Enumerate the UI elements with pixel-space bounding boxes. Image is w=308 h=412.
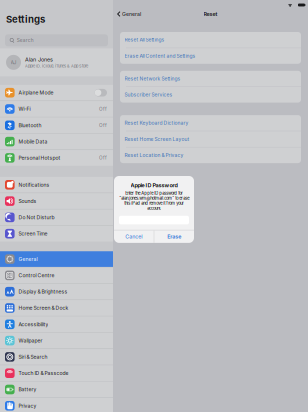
staticText: Erase — [167, 233, 181, 240]
button[interactable]: Reset Network Settings — [120, 71, 301, 86]
staticText: Privacy — [18, 403, 36, 409]
staticText: Display & Brightness — [18, 289, 67, 295]
button[interactable]: Display & Brightness — [0, 284, 113, 300]
staticText: Battery — [18, 386, 36, 392]
button[interactable]: Control Centre — [0, 268, 113, 283]
button[interactable]: Do Not Disturb — [0, 209, 113, 225]
staticText: Reset Home Screen Layout — [124, 136, 189, 142]
staticText: Airplane Mode — [18, 90, 53, 96]
staticText: Accessibility — [18, 321, 48, 327]
staticText: Sounds — [18, 198, 36, 204]
staticText: Subscriber Services — [124, 92, 172, 98]
button[interactable]: Siri & Search — [0, 349, 113, 365]
button[interactable]: Reset All Settings — [120, 32, 301, 48]
staticText: Reset Network Settings — [124, 76, 180, 82]
button[interactable]: Airplane Mode — [0, 85, 113, 101]
button[interactable]: Sounds — [0, 193, 113, 209]
staticText: Off — [99, 122, 107, 128]
staticText: Reset All Settings — [124, 37, 164, 43]
button[interactable]: Reset Home Screen Layout — [120, 131, 301, 147]
button[interactable]: General — [0, 251, 113, 267]
staticText: Settings — [6, 13, 45, 25]
button[interactable]: Screen Time — [0, 226, 113, 241]
staticText: Screen Time — [18, 231, 47, 237]
button[interactable]: Home Screen & Dock — [0, 300, 113, 316]
button[interactable]: Erase — [154, 230, 194, 243]
staticText: Search — [17, 37, 34, 43]
button[interactable]: Subscriber Services — [120, 87, 301, 103]
staticText: Off — [99, 106, 107, 112]
button[interactable]: Notifications — [0, 177, 113, 193]
staticText: Wi-Fi — [18, 106, 30, 112]
staticText: Reset Keyboard Dictionary — [124, 120, 188, 126]
staticText: General — [122, 11, 141, 17]
staticText: Wallpaper — [18, 337, 42, 344]
button[interactable]: Erase All Content and Settings — [120, 48, 301, 64]
button[interactable]: AJ — [0, 48, 113, 76]
staticText: Alan Jones — [25, 56, 53, 63]
staticText: Cancel — [125, 233, 142, 240]
staticText: Siri & Search — [18, 354, 47, 360]
button[interactable]: Reset Location & Privacy — [120, 147, 301, 163]
staticText: Mobile Data — [18, 138, 47, 145]
staticText: AJ — [10, 59, 16, 65]
staticText: Bluetooth — [18, 122, 41, 128]
button[interactable]: Reset Keyboard Dictionary — [120, 115, 301, 131]
staticText: Apple ID, iCloud, iTunes & App Store — [25, 63, 88, 68]
staticText: Do Not Disturb — [18, 214, 54, 220]
staticText: Touch ID & Passcode — [18, 370, 68, 376]
staticText: General — [18, 256, 37, 262]
staticText: Erase All Content and Settings — [124, 53, 195, 59]
staticText: Reset Location & Privacy — [124, 152, 183, 158]
button[interactable]: Wallpaper — [0, 333, 113, 348]
button[interactable]: Touch ID & Passcode — [0, 365, 113, 381]
button[interactable]: Cancel — [114, 230, 154, 243]
staticText: Off — [99, 155, 107, 161]
button[interactable]: Personal Hotspot — [0, 150, 113, 166]
button[interactable]: Bluetooth — [0, 117, 113, 133]
staticText: Reset — [203, 11, 217, 17]
button[interactable]: Mobile Data — [0, 134, 113, 149]
staticText: Personal Hotspot — [18, 155, 60, 161]
button[interactable]: Privacy — [0, 398, 113, 412]
button[interactable]: Battery — [0, 382, 113, 397]
staticText: Control Centre — [18, 272, 54, 278]
staticText: Notifications — [18, 182, 49, 188]
staticText: Apple ID Password — [130, 182, 177, 189]
button[interactable]: General — [113, 8, 146, 20]
button[interactable]: Accessibility — [0, 316, 113, 332]
staticText: Home Screen & Dock — [18, 305, 68, 311]
button[interactable]: Wi-Fi — [0, 101, 113, 117]
staticText: Enter the Apple ID password for “alan.jo… — [119, 191, 189, 211]
